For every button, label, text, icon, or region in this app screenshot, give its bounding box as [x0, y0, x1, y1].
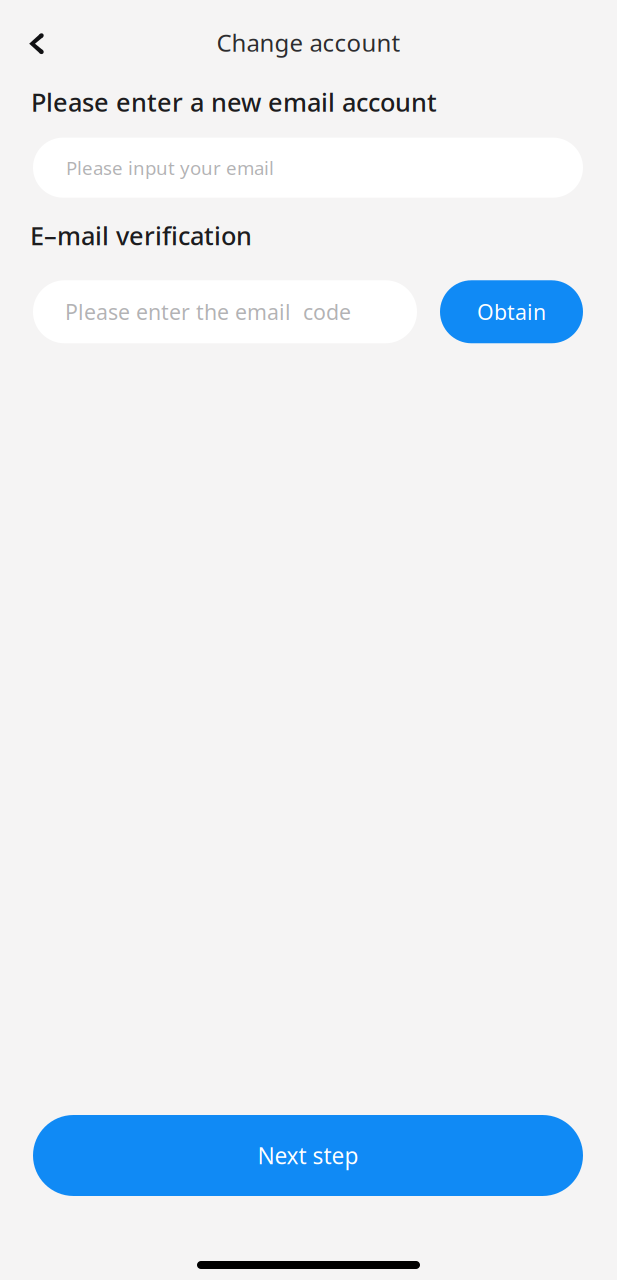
staticText: Please enter a new email account	[31, 85, 437, 119]
staticText: Please enter the email code	[65, 298, 351, 326]
button[interactable]: Next step	[33, 1115, 583, 1196]
staticText: Please input your email	[66, 155, 274, 180]
staticText: E–mail verification	[30, 219, 252, 252]
staticText: Obtain	[477, 298, 546, 326]
button[interactable]: Please input your email	[33, 138, 583, 198]
button[interactable]: Please enter the email code	[33, 280, 417, 343]
staticText: Next step	[257, 1140, 358, 1170]
button[interactable]: Obtain	[440, 280, 583, 343]
button[interactable]: Back	[9, 14, 65, 70]
staticText: Change account	[216, 27, 400, 58]
